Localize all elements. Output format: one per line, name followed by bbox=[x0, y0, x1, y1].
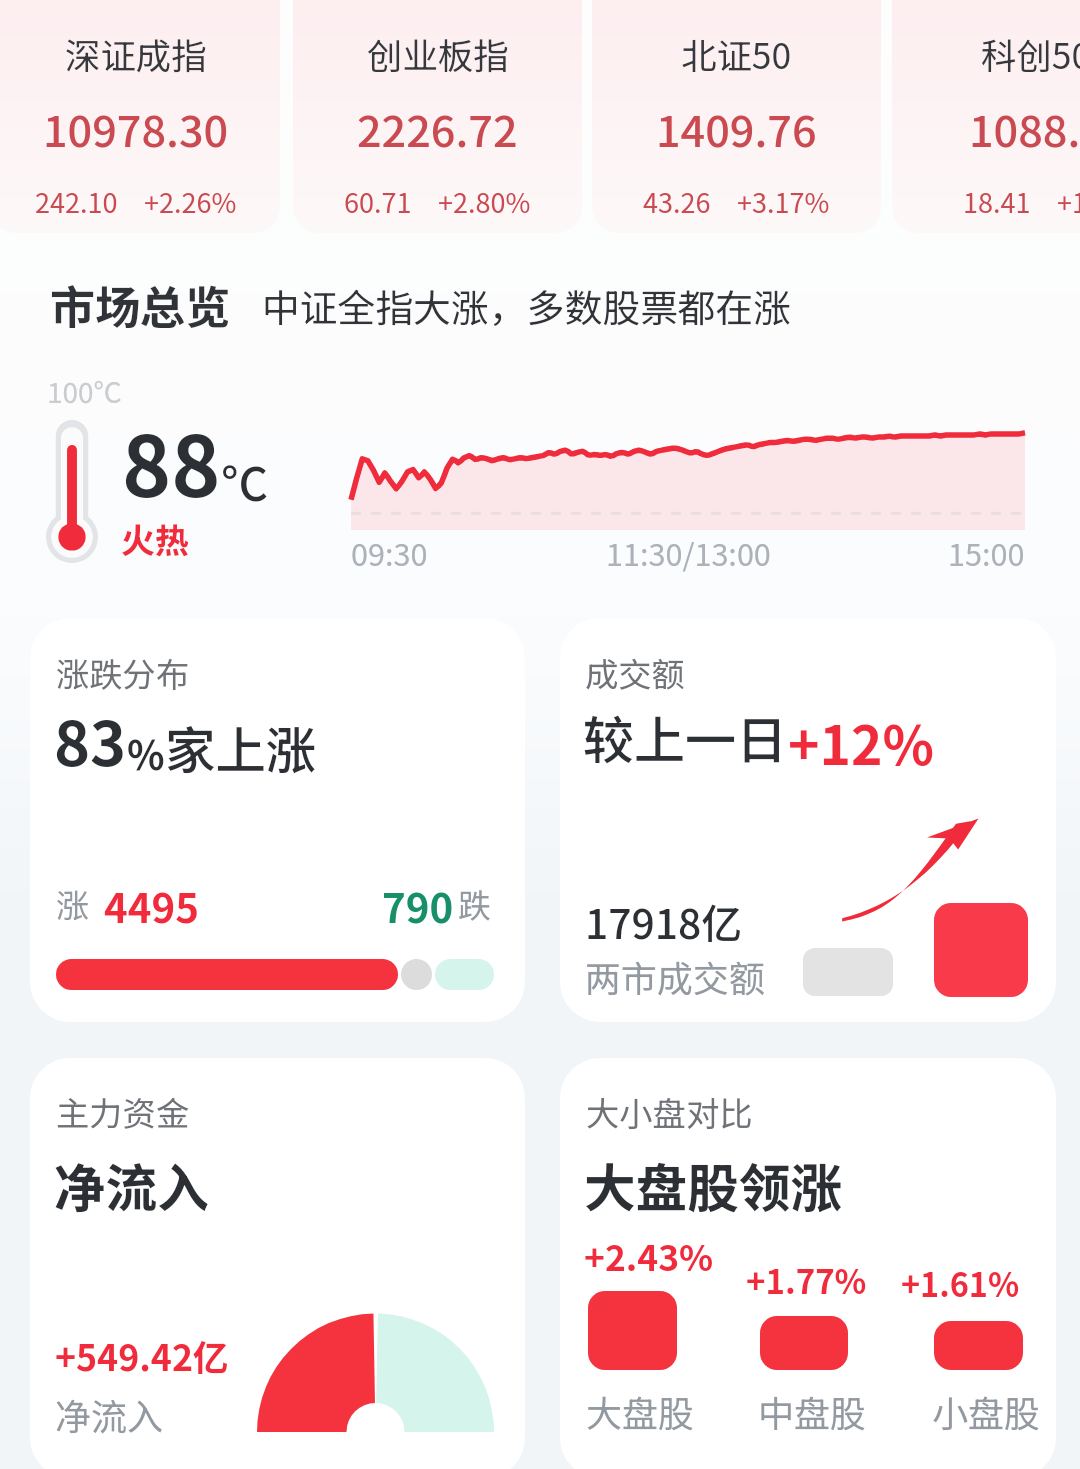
button[interactable]: 深证成指 bbox=[0, 0, 280, 233]
staticText: +1.61% bbox=[901, 1259, 1020, 1306]
button[interactable]: 创业板指 bbox=[293, 0, 582, 233]
staticText: 中盘股 bbox=[758, 1385, 867, 1437]
button[interactable]: 大小盘对比 bbox=[560, 1058, 1056, 1469]
staticText: °C bbox=[221, 448, 269, 514]
staticText: 88 bbox=[122, 400, 221, 521]
staticText: 100°C bbox=[47, 371, 122, 411]
staticText: 净流入 bbox=[55, 1388, 164, 1440]
button[interactable]: 成交额 bbox=[560, 618, 1056, 1022]
staticText: 大盘股 bbox=[586, 1385, 695, 1437]
staticText: 18.41 bbox=[963, 182, 1031, 221]
staticText: +2.26% bbox=[144, 182, 237, 221]
staticText: +1.77% bbox=[746, 1256, 867, 1304]
staticText: +2.43% bbox=[584, 1230, 714, 1281]
staticText: 09:30 bbox=[351, 531, 428, 575]
staticText: +2.80% bbox=[438, 182, 531, 221]
staticText: +1.7 bbox=[1057, 182, 1080, 221]
staticText: 中证全指大涨，多数股票都在涨 bbox=[262, 278, 792, 333]
staticText: 4495 bbox=[104, 876, 199, 934]
staticText: 83 bbox=[54, 695, 127, 784]
other: 中证全指分时走势图 bbox=[351, 422, 1025, 530]
staticText: 主力资金 bbox=[56, 1087, 190, 1135]
other: 市场温度计 bbox=[46, 419, 98, 563]
staticText: 1088.1 bbox=[969, 97, 1080, 160]
staticText: % bbox=[127, 725, 165, 781]
staticText: 创业板指 bbox=[367, 28, 509, 79]
staticText: 790 bbox=[382, 876, 454, 934]
staticText: 1409.76 bbox=[656, 97, 817, 160]
staticText: 大盘股领涨 bbox=[584, 1147, 842, 1222]
staticText: 15:00 bbox=[948, 531, 1025, 575]
staticText: 家上涨 bbox=[165, 711, 317, 784]
staticText: 大小盘对比 bbox=[586, 1087, 753, 1135]
staticText: 涨跌分布 bbox=[56, 648, 190, 696]
staticText: 市场总览 bbox=[50, 272, 231, 337]
staticText: 43.26 bbox=[643, 182, 711, 221]
staticText: 较上一日 bbox=[583, 700, 788, 774]
staticText: 科创50 bbox=[981, 28, 1080, 79]
staticText: 涨 bbox=[56, 880, 89, 928]
staticText: 10978.30 bbox=[43, 97, 229, 160]
staticText: 60.71 bbox=[344, 182, 412, 221]
staticText: 净流入 bbox=[54, 1147, 209, 1222]
button[interactable]: 北证50 bbox=[592, 0, 881, 233]
staticText: 火热 bbox=[121, 514, 189, 563]
button[interactable]: 涨跌分布 bbox=[30, 618, 525, 1022]
staticText: +549.42亿 bbox=[55, 1330, 229, 1382]
staticText: 242.10 bbox=[35, 182, 118, 221]
staticText: 小盘股 bbox=[932, 1385, 1041, 1437]
staticText: 两市成交额 bbox=[585, 950, 766, 1002]
staticText: 17918亿 bbox=[585, 892, 743, 951]
button[interactable]: 科创50 bbox=[892, 0, 1080, 233]
staticText: +12% bbox=[788, 703, 934, 780]
staticText: 11:30/13:00 bbox=[606, 531, 771, 575]
staticText: +3.17% bbox=[737, 182, 830, 221]
staticText: 深证成指 bbox=[65, 28, 207, 79]
staticText: 跌 bbox=[458, 880, 491, 928]
button[interactable]: 主力资金 bbox=[30, 1058, 525, 1469]
staticText: 2226.72 bbox=[357, 97, 518, 160]
staticText: 成交额 bbox=[585, 648, 685, 696]
staticText: 北证50 bbox=[681, 28, 792, 79]
button[interactable]: 市场总览 bbox=[0, 245, 1080, 575]
